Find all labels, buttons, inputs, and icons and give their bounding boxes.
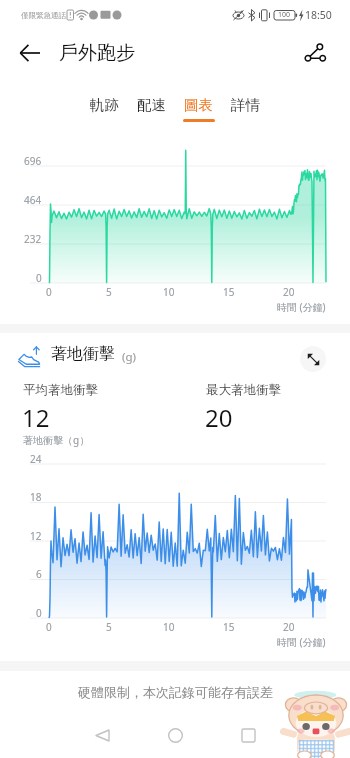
- staticText: 464: [24, 193, 42, 207]
- staticText: 0: [46, 285, 52, 299]
- button[interactable]: 詳情: [222, 88, 269, 130]
- staticText: 0: [46, 620, 52, 634]
- button[interactable]: Recents: [212, 712, 285, 758]
- staticText: 18:50: [305, 8, 332, 22]
- staticText: 平均著地衝擊: [23, 382, 98, 398]
- staticText: 20: [205, 401, 233, 434]
- staticText: (g): [122, 349, 136, 365]
- staticText: 戶外跑步: [59, 41, 135, 65]
- button[interactable]: 軌跡: [81, 88, 128, 130]
- staticText: 硬體限制，本次記錄可能存有誤差: [78, 684, 273, 700]
- staticText: 5: [106, 285, 112, 299]
- staticText: 軌跡: [90, 96, 119, 114]
- staticText: 0: [36, 606, 42, 620]
- staticText: 5: [106, 620, 112, 634]
- staticText: 10: [163, 620, 175, 634]
- staticText: 20: [283, 285, 295, 299]
- button[interactable]: Back: [66, 712, 139, 758]
- staticText: 時間 (分鐘): [277, 635, 326, 649]
- staticText: 時間 (分鐘): [277, 300, 326, 314]
- button[interactable]: Home: [139, 712, 212, 758]
- staticText: 最大著地衝擊: [206, 382, 281, 398]
- staticText: 0: [36, 271, 42, 285]
- staticText: 20: [283, 620, 295, 634]
- staticText: 15: [223, 620, 235, 634]
- staticText: 圖表: [184, 96, 213, 114]
- staticText: 12: [22, 401, 50, 434]
- staticText: 著地衝擊: [51, 344, 115, 364]
- staticText: 15: [223, 285, 235, 299]
- staticText: 12: [30, 529, 42, 543]
- staticText: 著地衝擊（g）: [23, 433, 90, 447]
- button[interactable]: Share: [298, 36, 332, 70]
- button[interactable]: 圖表: [175, 88, 222, 130]
- staticText: 配速: [137, 96, 166, 114]
- button[interactable]: Expand chart: [300, 346, 326, 372]
- staticText: 18: [30, 490, 42, 504]
- staticText: 24: [30, 452, 42, 466]
- staticText: 僅限緊急通話: [21, 11, 66, 20]
- staticText: 6: [36, 567, 42, 581]
- button[interactable]: Back: [13, 36, 47, 70]
- staticText: 232: [24, 232, 42, 246]
- button[interactable]: 配速: [128, 88, 175, 130]
- staticText: 詳情: [231, 96, 260, 114]
- staticText: 696: [24, 154, 42, 168]
- staticText: 10: [163, 285, 175, 299]
- staticText: 100: [278, 10, 291, 20]
